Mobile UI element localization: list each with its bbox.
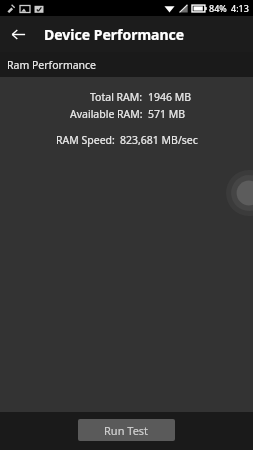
button[interactable]: Run Test	[78, 419, 175, 441]
staticText: RAM Speed:	[56, 133, 115, 147]
button[interactable]: Back	[0, 16, 36, 52]
staticText: 823,681 MB/sec	[120, 133, 198, 147]
staticText: Total RAM:	[90, 90, 143, 104]
staticText: Run Test	[104, 423, 149, 438]
staticText: 4:13	[231, 2, 249, 14]
staticText: Available RAM:	[70, 107, 143, 121]
staticText: 84%	[209, 2, 227, 14]
staticText: 1946 MB	[148, 90, 192, 104]
staticText: Device Performance	[44, 25, 185, 44]
staticText: Ram Performance	[7, 58, 97, 72]
staticText: 571 MB	[148, 107, 186, 121]
